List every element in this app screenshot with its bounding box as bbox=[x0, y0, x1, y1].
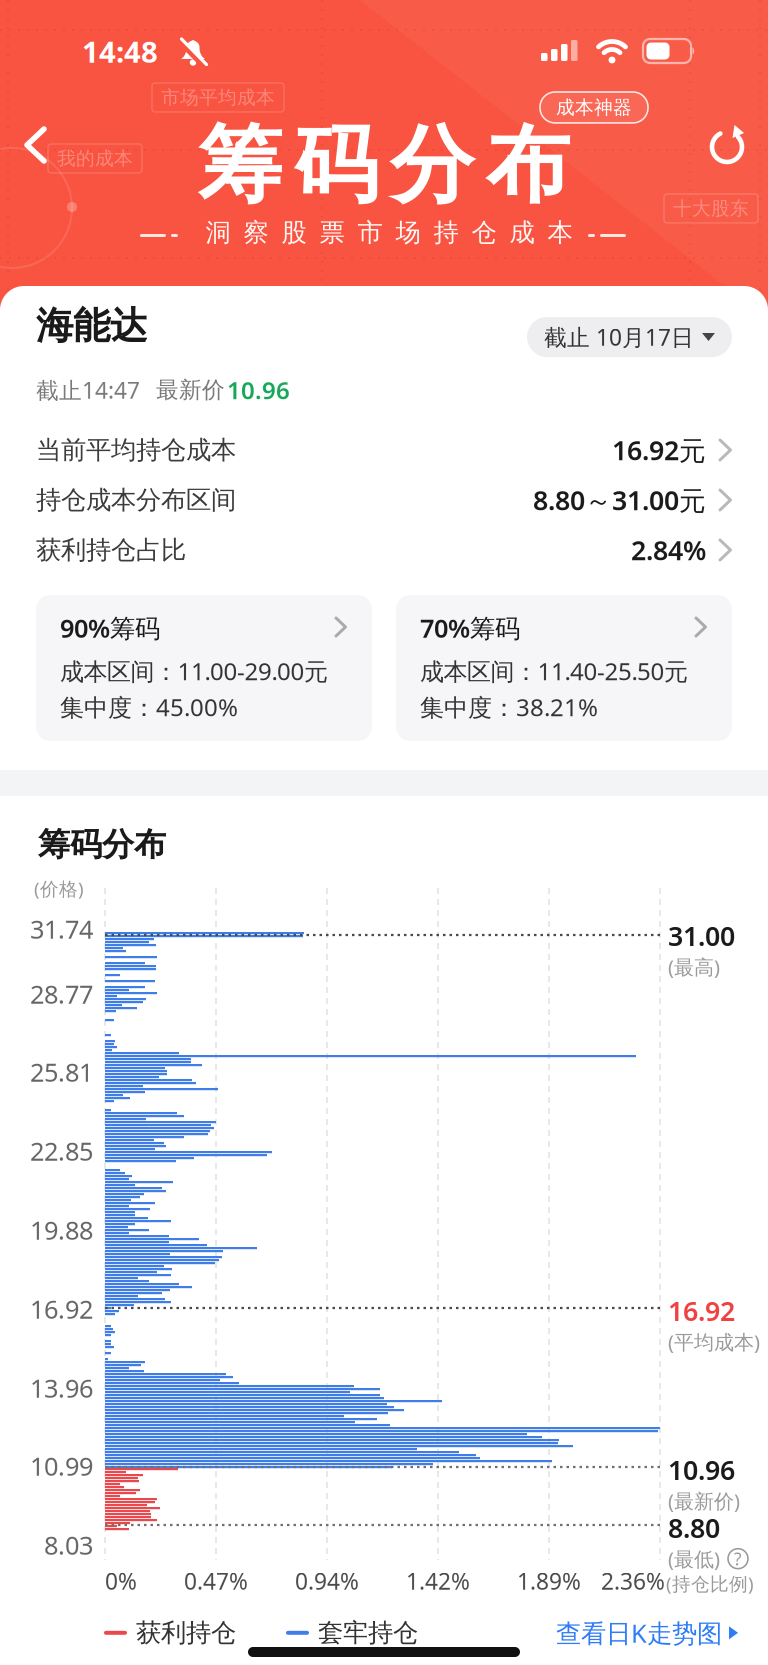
staticText: 31.74 bbox=[30, 912, 93, 946]
button[interactable]: 持仓成本分布区间 bbox=[36, 475, 732, 525]
button[interactable]: Refresh bbox=[704, 122, 750, 168]
staticText: 90%筹码 bbox=[60, 611, 160, 645]
button[interactable]: 最低价说明 bbox=[728, 1549, 748, 1569]
staticText: 查看日K走势图 bbox=[556, 1616, 722, 1650]
staticText: 10.96 bbox=[227, 374, 290, 406]
staticText: (最新价) bbox=[668, 1487, 740, 1514]
staticText: 成本区间：11.00-29.00元 bbox=[60, 655, 328, 687]
staticText: 套牢持仓 bbox=[318, 1617, 418, 1648]
button[interactable]: 90%筹码 bbox=[36, 595, 372, 741]
staticText: 成本神器 bbox=[556, 96, 632, 119]
staticText: 13.96 bbox=[30, 1371, 93, 1405]
staticText: 我的成本 bbox=[57, 147, 133, 170]
staticText: 2.84% bbox=[631, 532, 706, 568]
staticText: 8.80 bbox=[668, 1510, 720, 1545]
staticText: 25.81 bbox=[30, 1055, 93, 1089]
staticText: 当前平均持仓成本 bbox=[36, 434, 236, 465]
staticText: ? bbox=[734, 1547, 742, 1570]
staticText: (平均成本) bbox=[668, 1328, 760, 1355]
staticText: 22.85 bbox=[30, 1134, 93, 1168]
staticText: 14:48 bbox=[82, 32, 158, 71]
staticText: (持仓比例) bbox=[666, 1571, 754, 1596]
staticText: 截止14:47 bbox=[36, 375, 140, 405]
staticText: 集中度：45.00% bbox=[60, 691, 238, 723]
staticText: 获利持仓占比 bbox=[36, 534, 186, 565]
staticText: 0% bbox=[105, 1566, 137, 1596]
staticText: 8.80～31.00元 bbox=[533, 482, 706, 518]
button[interactable]: 获利持仓占比 bbox=[36, 525, 732, 575]
staticText: 筹码分布 bbox=[198, 114, 570, 217]
staticText: 0.94% bbox=[295, 1566, 359, 1596]
button[interactable]: 70%筹码 bbox=[396, 595, 732, 741]
staticText: (最低) bbox=[668, 1545, 720, 1572]
staticText: 洞察股票市场持仓成本 bbox=[205, 217, 572, 248]
staticText: (最高) bbox=[668, 953, 720, 980]
staticText: 市场平均成本 bbox=[161, 86, 275, 109]
staticText: 16.92 bbox=[668, 1293, 735, 1328]
staticText: 10.99 bbox=[30, 1449, 93, 1483]
staticText: 19.88 bbox=[30, 1213, 93, 1247]
staticText: (价格) bbox=[34, 876, 84, 901]
button[interactable]: 当前平均持仓成本 bbox=[36, 425, 732, 475]
button[interactable]: 成本神器 bbox=[540, 92, 648, 123]
staticText: 1.89% bbox=[517, 1566, 581, 1596]
staticText: 集中度：38.21% bbox=[420, 691, 598, 723]
staticText: 海能达 bbox=[36, 303, 147, 349]
staticText: 10.96 bbox=[668, 1452, 735, 1487]
staticText: 70%筹码 bbox=[420, 611, 520, 645]
staticText: 成本区间：11.40-25.50元 bbox=[420, 655, 688, 687]
staticText: 16.92元 bbox=[612, 432, 706, 468]
button[interactable]: 查看日K走势图 bbox=[556, 1616, 738, 1650]
staticText: 获利持仓 bbox=[136, 1617, 236, 1648]
button[interactable]: Back bbox=[16, 122, 56, 168]
staticText: 最新价 bbox=[156, 376, 225, 404]
button[interactable]: 选择日期 bbox=[527, 317, 732, 357]
staticText: 8.03 bbox=[44, 1528, 93, 1562]
staticText: 16.92 bbox=[30, 1292, 93, 1326]
staticText: 28.77 bbox=[30, 977, 93, 1011]
staticText: 1.42% bbox=[406, 1566, 470, 1596]
staticText: 截止 10月17日 bbox=[544, 322, 694, 352]
staticText: 十大股东 bbox=[673, 197, 749, 220]
staticText: 持仓成本分布区间 bbox=[36, 484, 236, 515]
staticText: 31.00 bbox=[668, 918, 735, 953]
staticText: 筹码分布 bbox=[38, 825, 166, 864]
staticText: 0.47% bbox=[184, 1566, 248, 1596]
staticText: 2.36% bbox=[601, 1566, 665, 1596]
